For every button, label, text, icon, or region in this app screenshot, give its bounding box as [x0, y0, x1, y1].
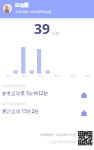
other: QR code [78, 131, 92, 145]
staticText: 参考运动量 5分钟12秒 [2, 90, 48, 96]
staticText: 累计运动 15次2秒 [2, 108, 39, 114]
staticText: 39 [34, 19, 51, 38]
staticText: 周四 [54, 74, 60, 78]
staticText: 周三 [38, 74, 44, 78]
staticText: 周六 [85, 74, 91, 78]
staticText: 分钟 [52, 31, 60, 36]
staticText: 周五 [70, 74, 76, 78]
staticText: 累计运动次数统计 [2, 102, 26, 106]
staticText: 今日运动时长目标 [2, 84, 26, 88]
staticText: 健康数据 · 运动统计分析 [40, 132, 76, 137]
staticText: 运动圈 [15, 3, 29, 9]
button[interactable]: Profile [3, 4, 12, 13]
staticText: 今日运动 · 你已坚持3天啦 [15, 10, 52, 14]
staticText: 周二 [22, 74, 28, 78]
button[interactable]: 累计运动次数统计 [0, 102, 94, 114]
button[interactable]: 今日运动时长目标 [0, 84, 94, 96]
staticText: 周一 [6, 74, 12, 78]
staticText: 长按二维码识别查看 [49, 140, 76, 144]
